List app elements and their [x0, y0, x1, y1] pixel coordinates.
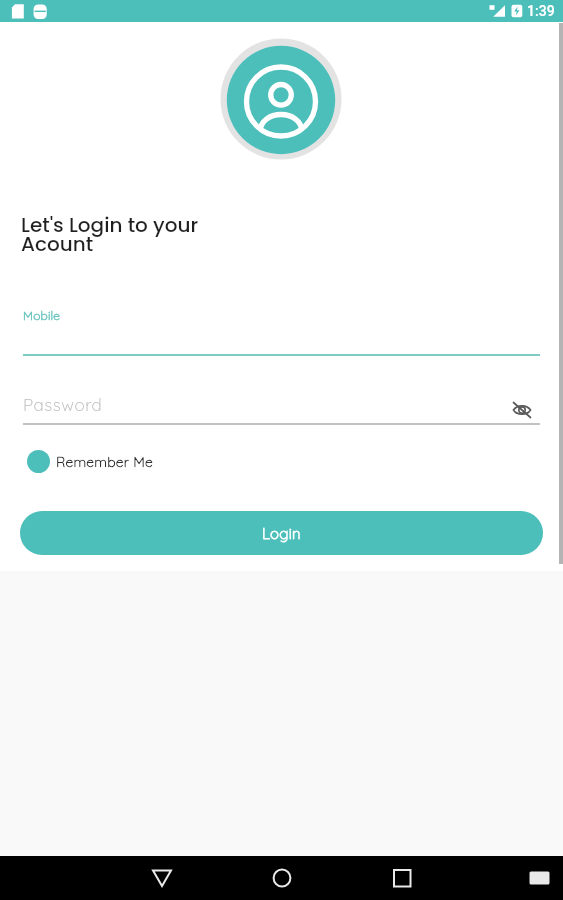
staticText: Mobile — [23, 308, 61, 323]
staticText: Login — [262, 524, 301, 543]
staticText: Let's Login to your Acount — [21, 211, 221, 258]
button[interactable]: Remember Me — [25, 448, 155, 475]
staticText: Password — [23, 394, 103, 415]
staticText: 1:39 — [527, 3, 555, 19]
button[interactable]: Login — [20, 511, 543, 555]
staticText: Remember Me — [56, 453, 153, 471]
button[interactable]: Show password — [506, 394, 537, 425]
